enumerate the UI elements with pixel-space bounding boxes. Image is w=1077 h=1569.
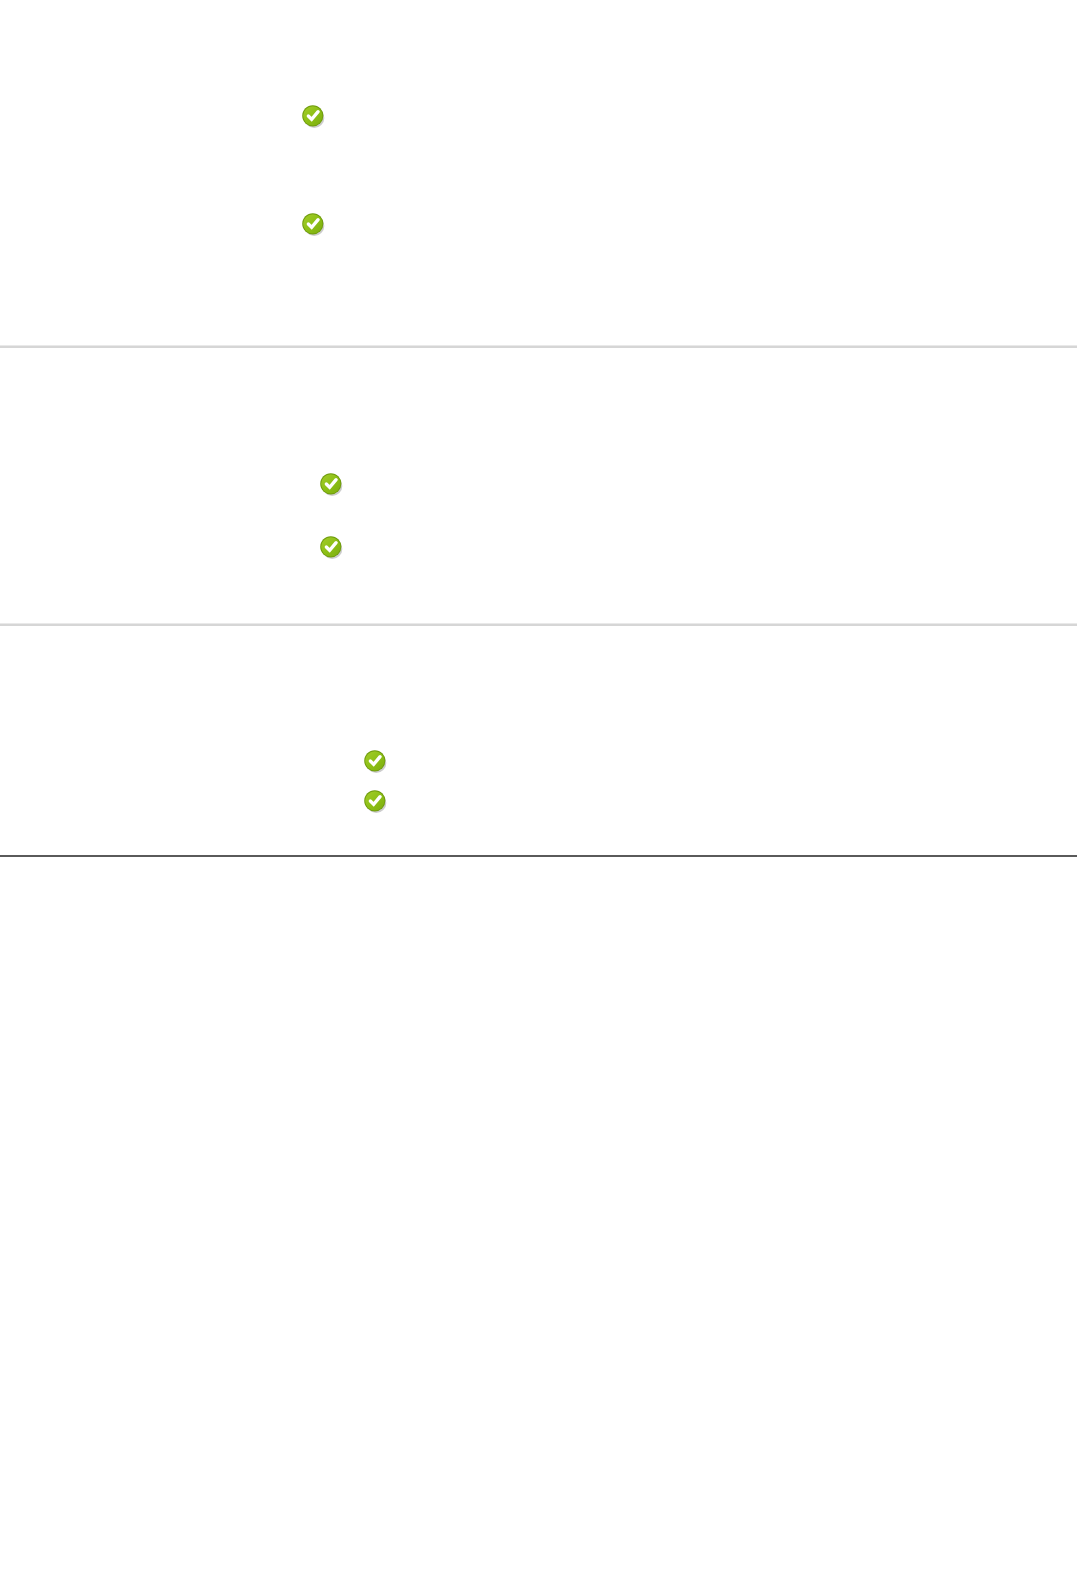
button[interactable]: Completed item 3 [320, 473, 343, 496]
button[interactable]: Completed item 4 [320, 536, 343, 559]
button[interactable]: Completed item 2 [302, 213, 325, 236]
button[interactable]: Completed item 5 [364, 750, 387, 773]
button[interactable]: Completed item 6 [364, 790, 387, 813]
button[interactable]: Completed item 1 [302, 105, 325, 128]
